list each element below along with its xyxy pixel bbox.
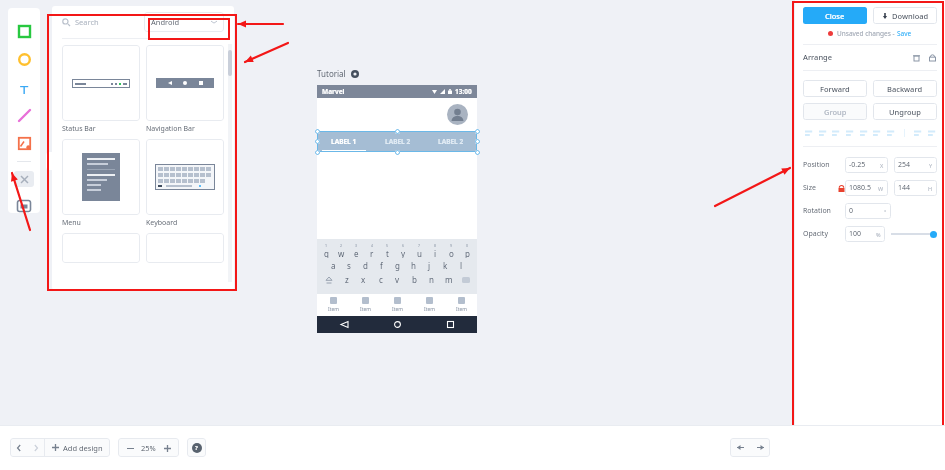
button[interactable] <box>146 139 224 215</box>
button[interactable]: Home <box>371 316 424 333</box>
staticText: H <box>928 185 933 192</box>
button[interactable]: LABEL 1 <box>317 131 371 152</box>
button[interactable]: Redo <box>750 438 770 457</box>
button[interactable]: Undo <box>730 438 750 457</box>
staticText: Opacity <box>803 229 828 239</box>
button[interactable]: Align 1 <box>817 127 828 138</box>
button[interactable]: Previous design <box>10 438 27 457</box>
button[interactable]: x <box>355 273 372 286</box>
button[interactable]: Align 0 <box>803 127 814 138</box>
button[interactable]: Item <box>445 294 477 316</box>
button[interactable]: 0 <box>459 243 475 258</box>
button[interactable]: Item <box>413 294 445 316</box>
staticText: w <box>338 248 345 258</box>
button[interactable]: Align 8 <box>912 127 923 138</box>
button[interactable]: Close tool <box>14 171 34 187</box>
button[interactable]: 3 <box>349 243 364 258</box>
button[interactable]: Image tool <box>12 134 36 152</box>
button[interactable]: Screen settings <box>350 69 359 78</box>
button[interactable] <box>62 45 140 121</box>
staticText: g <box>395 260 400 271</box>
button[interactable]: -0.25 <box>845 157 888 173</box>
button[interactable]: 5 <box>379 243 395 258</box>
staticText: LABEL 2 <box>438 137 464 146</box>
button[interactable]: b <box>406 273 423 286</box>
button[interactable] <box>62 233 140 263</box>
button[interactable]: Align 4 <box>858 127 869 138</box>
button[interactable]: Add design <box>52 438 103 457</box>
button[interactable]: LABEL 2 <box>424 131 477 152</box>
button[interactable]: Back <box>317 316 371 333</box>
button[interactable]: Zoom in <box>162 443 172 453</box>
button[interactable]: Delete <box>911 52 921 62</box>
button[interactable]: m <box>440 273 457 286</box>
button[interactable]: Search <box>62 12 138 32</box>
button[interactable]: 254 <box>894 157 937 173</box>
button[interactable]: 144 <box>894 180 937 196</box>
staticText: ° <box>884 208 887 215</box>
button[interactable]: Help <box>187 438 206 457</box>
button[interactable]: 0 <box>845 203 891 219</box>
staticText: Keyboard <box>146 218 178 228</box>
button[interactable]: f <box>373 259 389 272</box>
button[interactable]: Align 9 <box>926 127 937 138</box>
button[interactable]: g <box>389 259 405 272</box>
button[interactable]: 100 <box>845 226 885 242</box>
button[interactable]: Align 2 <box>830 127 841 138</box>
button[interactable]: j <box>421 259 437 272</box>
button[interactable]: Zoom out <box>125 443 135 453</box>
button[interactable]: k <box>437 259 453 272</box>
button[interactable]: h <box>405 259 421 272</box>
button[interactable]: 9 <box>443 243 459 258</box>
button[interactable]: Recents <box>424 316 477 333</box>
button[interactable]: c <box>372 273 389 286</box>
button[interactable]: Group <box>803 103 867 120</box>
button[interactable]: Line tool <box>12 106 36 124</box>
button[interactable]: s <box>341 259 357 272</box>
button[interactable]: Opacity slider <box>930 231 937 238</box>
staticText: Item <box>328 306 339 313</box>
button[interactable]: Android <box>144 12 224 32</box>
button[interactable]: 7 <box>411 243 427 258</box>
button[interactable]: Ungroup <box>873 103 937 120</box>
button[interactable]: 8 <box>427 243 443 258</box>
button[interactable]: d <box>357 259 373 272</box>
button[interactable]: v <box>389 273 406 286</box>
button[interactable]: Forward <box>803 80 867 97</box>
button[interactable]: 1080.5 <box>845 180 888 196</box>
button[interactable]: Ellipse tool <box>12 50 36 68</box>
button[interactable]: l <box>453 259 469 272</box>
button[interactable]: LABEL 2 <box>371 131 424 152</box>
button[interactable]: Next design <box>27 438 44 457</box>
button[interactable]: Item <box>317 294 349 316</box>
button[interactable]: n <box>423 273 440 286</box>
staticText: o <box>449 248 454 258</box>
button[interactable]: Lock <box>927 52 937 62</box>
button[interactable]: Align 6 <box>885 127 896 138</box>
button[interactable]: Save <box>897 29 912 38</box>
button[interactable]: Align 5 <box>871 127 882 138</box>
button[interactable]: 2 <box>334 243 349 258</box>
button[interactable]: 4 <box>364 243 379 258</box>
button[interactable]: Text tool <box>12 78 36 96</box>
button[interactable] <box>146 233 224 263</box>
button[interactable]: Backward <box>873 80 937 97</box>
button[interactable] <box>146 45 224 121</box>
button[interactable]: Close <box>803 7 867 24</box>
button[interactable]: Library <box>12 199 36 213</box>
button[interactable]: Align 7 <box>899 127 910 138</box>
button[interactable]: a <box>325 259 341 272</box>
button[interactable]: Item <box>381 294 413 316</box>
button[interactable]: Backspace <box>457 273 474 286</box>
button[interactable]: Item <box>349 294 381 316</box>
button[interactable] <box>62 139 140 215</box>
button[interactable]: Download <box>873 7 937 24</box>
button[interactable]: 6 <box>395 243 411 258</box>
button[interactable]: 1 <box>319 243 334 258</box>
button[interactable]: Align 3 <box>844 127 855 138</box>
button[interactable]: z <box>338 273 355 286</box>
button[interactable]: Rectangle tool <box>12 22 36 40</box>
button[interactable]: Collapse library <box>46 152 53 170</box>
button[interactable]: Shift <box>320 273 338 286</box>
